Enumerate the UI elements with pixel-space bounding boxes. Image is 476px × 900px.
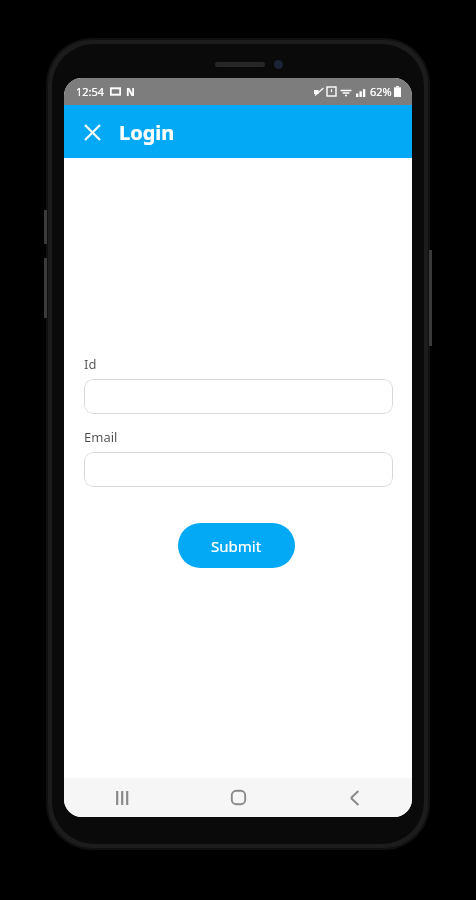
button[interactable]: Back [296,778,412,817]
staticText: Email [84,428,118,446]
button[interactable]: Id input field [84,379,393,414]
staticText: Submit [211,536,262,556]
button[interactable]: Email input field [84,452,393,487]
staticText: 62% [370,84,392,99]
staticText: Login [119,119,175,146]
button[interactable]: Recent apps [64,778,180,817]
staticText: N [126,84,135,99]
button[interactable]: Home [180,778,296,817]
button[interactable]: Submit [178,523,295,568]
staticText: 12:54 [76,84,105,99]
button[interactable]: Close [74,114,110,150]
staticText: Id [84,355,97,373]
